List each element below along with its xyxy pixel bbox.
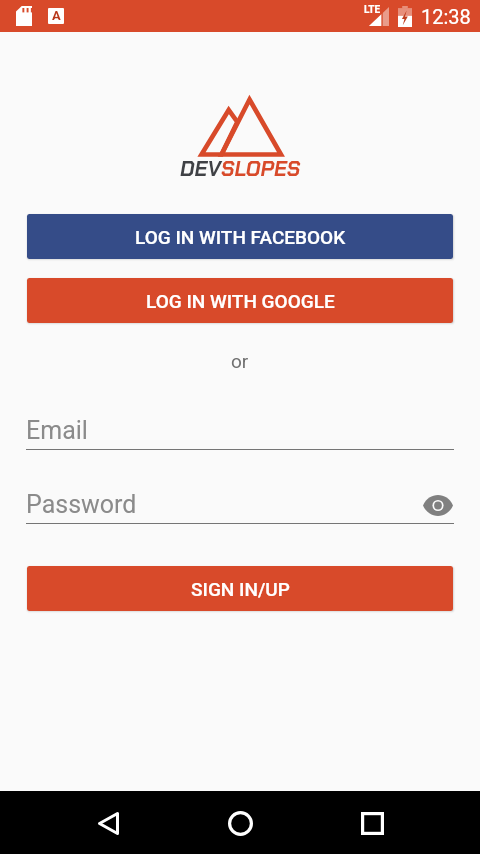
staticText: LTE [364, 4, 381, 16]
button[interactable]: Show password [420, 488, 456, 522]
button[interactable]: Back [84, 799, 132, 847]
button[interactable]: Home [216, 799, 264, 847]
button[interactable]: SIGN IN/UP [27, 566, 453, 611]
staticText: LOG IN WITH FACEBOOK [135, 226, 346, 248]
staticText: DEV [180, 155, 221, 182]
button[interactable]: LOG IN WITH FACEBOOK [27, 214, 453, 259]
staticText: SLOPES [221, 155, 301, 182]
staticText: Password [26, 490, 137, 519]
button[interactable]: Recents [348, 799, 396, 847]
staticText: Email [26, 416, 88, 445]
staticText: A [52, 8, 61, 23]
staticText: LOG IN WITH GOOGLE [146, 290, 335, 312]
staticText: SIGN IN/UP [191, 578, 290, 600]
staticText: or [231, 350, 249, 372]
staticText: 12:38 [421, 5, 471, 28]
button[interactable]: LOG IN WITH GOOGLE [27, 278, 453, 323]
